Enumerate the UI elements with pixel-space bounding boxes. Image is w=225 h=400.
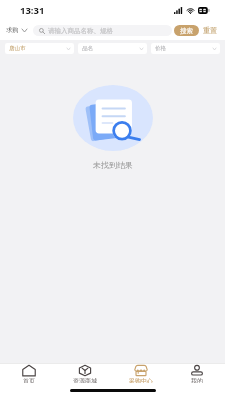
button[interactable]: 品名 bbox=[78, 43, 147, 54]
staticText: 采购中心 bbox=[129, 377, 153, 383]
staticText: 未找到结果 bbox=[93, 160, 133, 170]
staticText: 资源商城 bbox=[73, 377, 97, 383]
button[interactable]: 求购 bbox=[5, 23, 28, 37]
staticText: 13:31 bbox=[20, 4, 45, 17]
button[interactable]: 我的 bbox=[169, 364, 225, 383]
staticText: 品名 bbox=[82, 45, 93, 52]
staticText: 重置 bbox=[203, 26, 218, 35]
staticText: 我的 bbox=[191, 377, 203, 383]
staticText: 首页 bbox=[23, 377, 35, 383]
button[interactable]: 唐山市 bbox=[5, 43, 74, 54]
button[interactable]: 重置 bbox=[201, 23, 220, 38]
button[interactable]: 请输入商品名称、规格 bbox=[33, 25, 172, 36]
button[interactable]: 采购中心 bbox=[113, 364, 169, 383]
staticText: 搜索 bbox=[180, 27, 193, 35]
staticText: 价格 bbox=[155, 45, 166, 52]
staticText: 请输入商品名称、规格 bbox=[48, 27, 113, 35]
staticText: 唐山市 bbox=[9, 45, 26, 52]
button[interactable]: 搜索 bbox=[174, 25, 199, 36]
button[interactable]: 资源商城 bbox=[57, 364, 113, 383]
button[interactable]: 首页 bbox=[0, 364, 57, 383]
button[interactable]: 价格 bbox=[151, 43, 220, 54]
staticText: 求购 bbox=[6, 26, 19, 34]
